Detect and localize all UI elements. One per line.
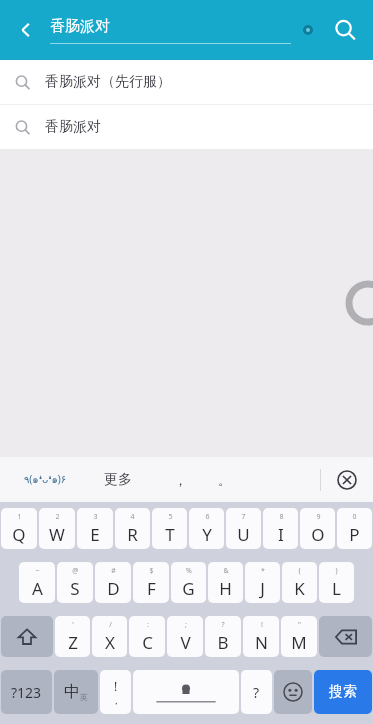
- button[interactable]: 0: [337, 508, 372, 549]
- button[interactable]: 6: [189, 508, 224, 549]
- button[interactable]: 7: [226, 508, 261, 549]
- staticText: 2: [55, 512, 60, 522]
- staticText: 1: [17, 512, 22, 522]
- button[interactable]: &: [208, 562, 243, 603]
- button[interactable]: :: [129, 616, 165, 657]
- staticText: E: [90, 523, 100, 546]
- button[interactable]: ?123: [1, 670, 52, 714]
- staticText: V: [180, 631, 191, 654]
- button[interactable]: %: [171, 562, 206, 603]
- staticText: Q: [12, 523, 26, 546]
- staticText: M: [291, 631, 307, 654]
- button[interactable]: 2: [39, 508, 75, 549]
- staticText: ?123: [11, 683, 42, 702]
- staticText: G: [182, 577, 195, 600]
- button[interactable]: #: [95, 562, 131, 603]
- button[interactable]: 1: [1, 508, 37, 549]
- button[interactable]: Search: [325, 10, 365, 50]
- staticText: F: [147, 577, 156, 600]
- button[interactable]: Backspace: [319, 616, 372, 657]
- staticText: 9: [316, 512, 321, 522]
- button[interactable]: ٩(๑❛ᴗ❛๑)۶: [0, 457, 90, 502]
- staticText: @: [72, 566, 79, 576]
- staticText: S: [70, 577, 80, 600]
- staticText: U: [237, 523, 250, 546]
- button[interactable]: ': [55, 616, 90, 657]
- staticText: 0: [352, 512, 357, 522]
- staticText: :: [147, 620, 149, 630]
- button[interactable]: 香肠派对（先行服）: [0, 60, 373, 104]
- button[interactable]: 。: [209, 465, 239, 495]
- button[interactable]: Clear: [291, 13, 325, 47]
- staticText: 8: [279, 512, 284, 522]
- staticText: 香肠派对: [50, 17, 110, 36]
- staticText: &: [223, 566, 229, 576]
- button[interactable]: Back: [6, 10, 46, 50]
- staticText: !: [261, 620, 263, 630]
- staticText: Y: [202, 523, 212, 546]
- button[interactable]: *: [245, 562, 280, 603]
- button[interactable]: 9: [300, 508, 335, 549]
- staticText: J: [260, 577, 265, 600]
- button[interactable]: (: [282, 562, 317, 603]
- button[interactable]: 香肠派对: [0, 105, 373, 149]
- staticText: ~: [35, 566, 40, 576]
- staticText: 3: [93, 512, 98, 522]
- staticText: 中: [64, 682, 80, 702]
- button[interactable]: ，: [165, 465, 195, 495]
- button[interactable]: 搜索: [314, 670, 372, 714]
- staticText: ٩(๑❛ᴗ❛๑)۶: [24, 472, 67, 488]
- staticText: 4: [130, 512, 135, 522]
- button[interactable]: 更多: [90, 457, 145, 502]
- button[interactable]: ?: [241, 670, 272, 714]
- staticText: 香肠派对（先行服）: [45, 73, 171, 91]
- button[interactable]: @: [57, 562, 93, 603]
- staticText: A: [32, 577, 43, 600]
- button[interactable]: !: [100, 670, 131, 714]
- button[interactable]: ): [319, 562, 354, 603]
- staticText: N: [255, 631, 268, 654]
- staticText: ": [298, 620, 301, 630]
- staticText: ;: [185, 620, 187, 630]
- staticText: 搜索: [329, 683, 357, 701]
- staticText: (: [298, 566, 301, 576]
- staticText: ): [335, 566, 338, 576]
- button[interactable]: Emoji: [274, 670, 312, 714]
- button[interactable]: Space: [133, 670, 239, 714]
- staticText: X: [105, 631, 115, 654]
- staticText: 英: [80, 692, 88, 702]
- button[interactable]: $: [133, 562, 169, 603]
- staticText: P: [349, 523, 360, 546]
- staticText: %: [186, 566, 192, 576]
- button[interactable]: 5: [152, 508, 187, 549]
- staticText: I: [278, 523, 284, 546]
- button[interactable]: Shift: [1, 616, 53, 657]
- button[interactable]: !: [243, 616, 279, 657]
- staticText: L: [332, 577, 341, 600]
- button[interactable]: ": [281, 616, 317, 657]
- staticText: ?: [253, 683, 260, 702]
- staticText: 香肠派对: [45, 118, 101, 136]
- staticText: *: [261, 566, 265, 576]
- button[interactable]: Close keyboard: [321, 457, 373, 502]
- button[interactable]: ;: [167, 616, 203, 657]
- staticText: #: [111, 566, 116, 576]
- staticText: ，: [174, 472, 187, 488]
- button[interactable]: 3: [77, 508, 113, 549]
- staticText: 5: [168, 512, 173, 522]
- button[interactable]: 4: [115, 508, 150, 549]
- staticText: $: [149, 566, 154, 576]
- staticText: B: [217, 631, 229, 654]
- button[interactable]: ~: [19, 562, 55, 603]
- staticText: /: [109, 620, 112, 630]
- button[interactable]: 中: [54, 670, 98, 714]
- staticText: Z: [68, 631, 78, 654]
- button[interactable]: ?: [205, 616, 241, 657]
- button[interactable]: 8: [263, 508, 298, 549]
- staticText: H: [219, 577, 232, 600]
- button[interactable]: /: [92, 616, 127, 657]
- staticText: R: [127, 523, 138, 546]
- staticText: C: [142, 631, 153, 654]
- staticText: K: [294, 577, 305, 600]
- staticText: !: [114, 678, 118, 694]
